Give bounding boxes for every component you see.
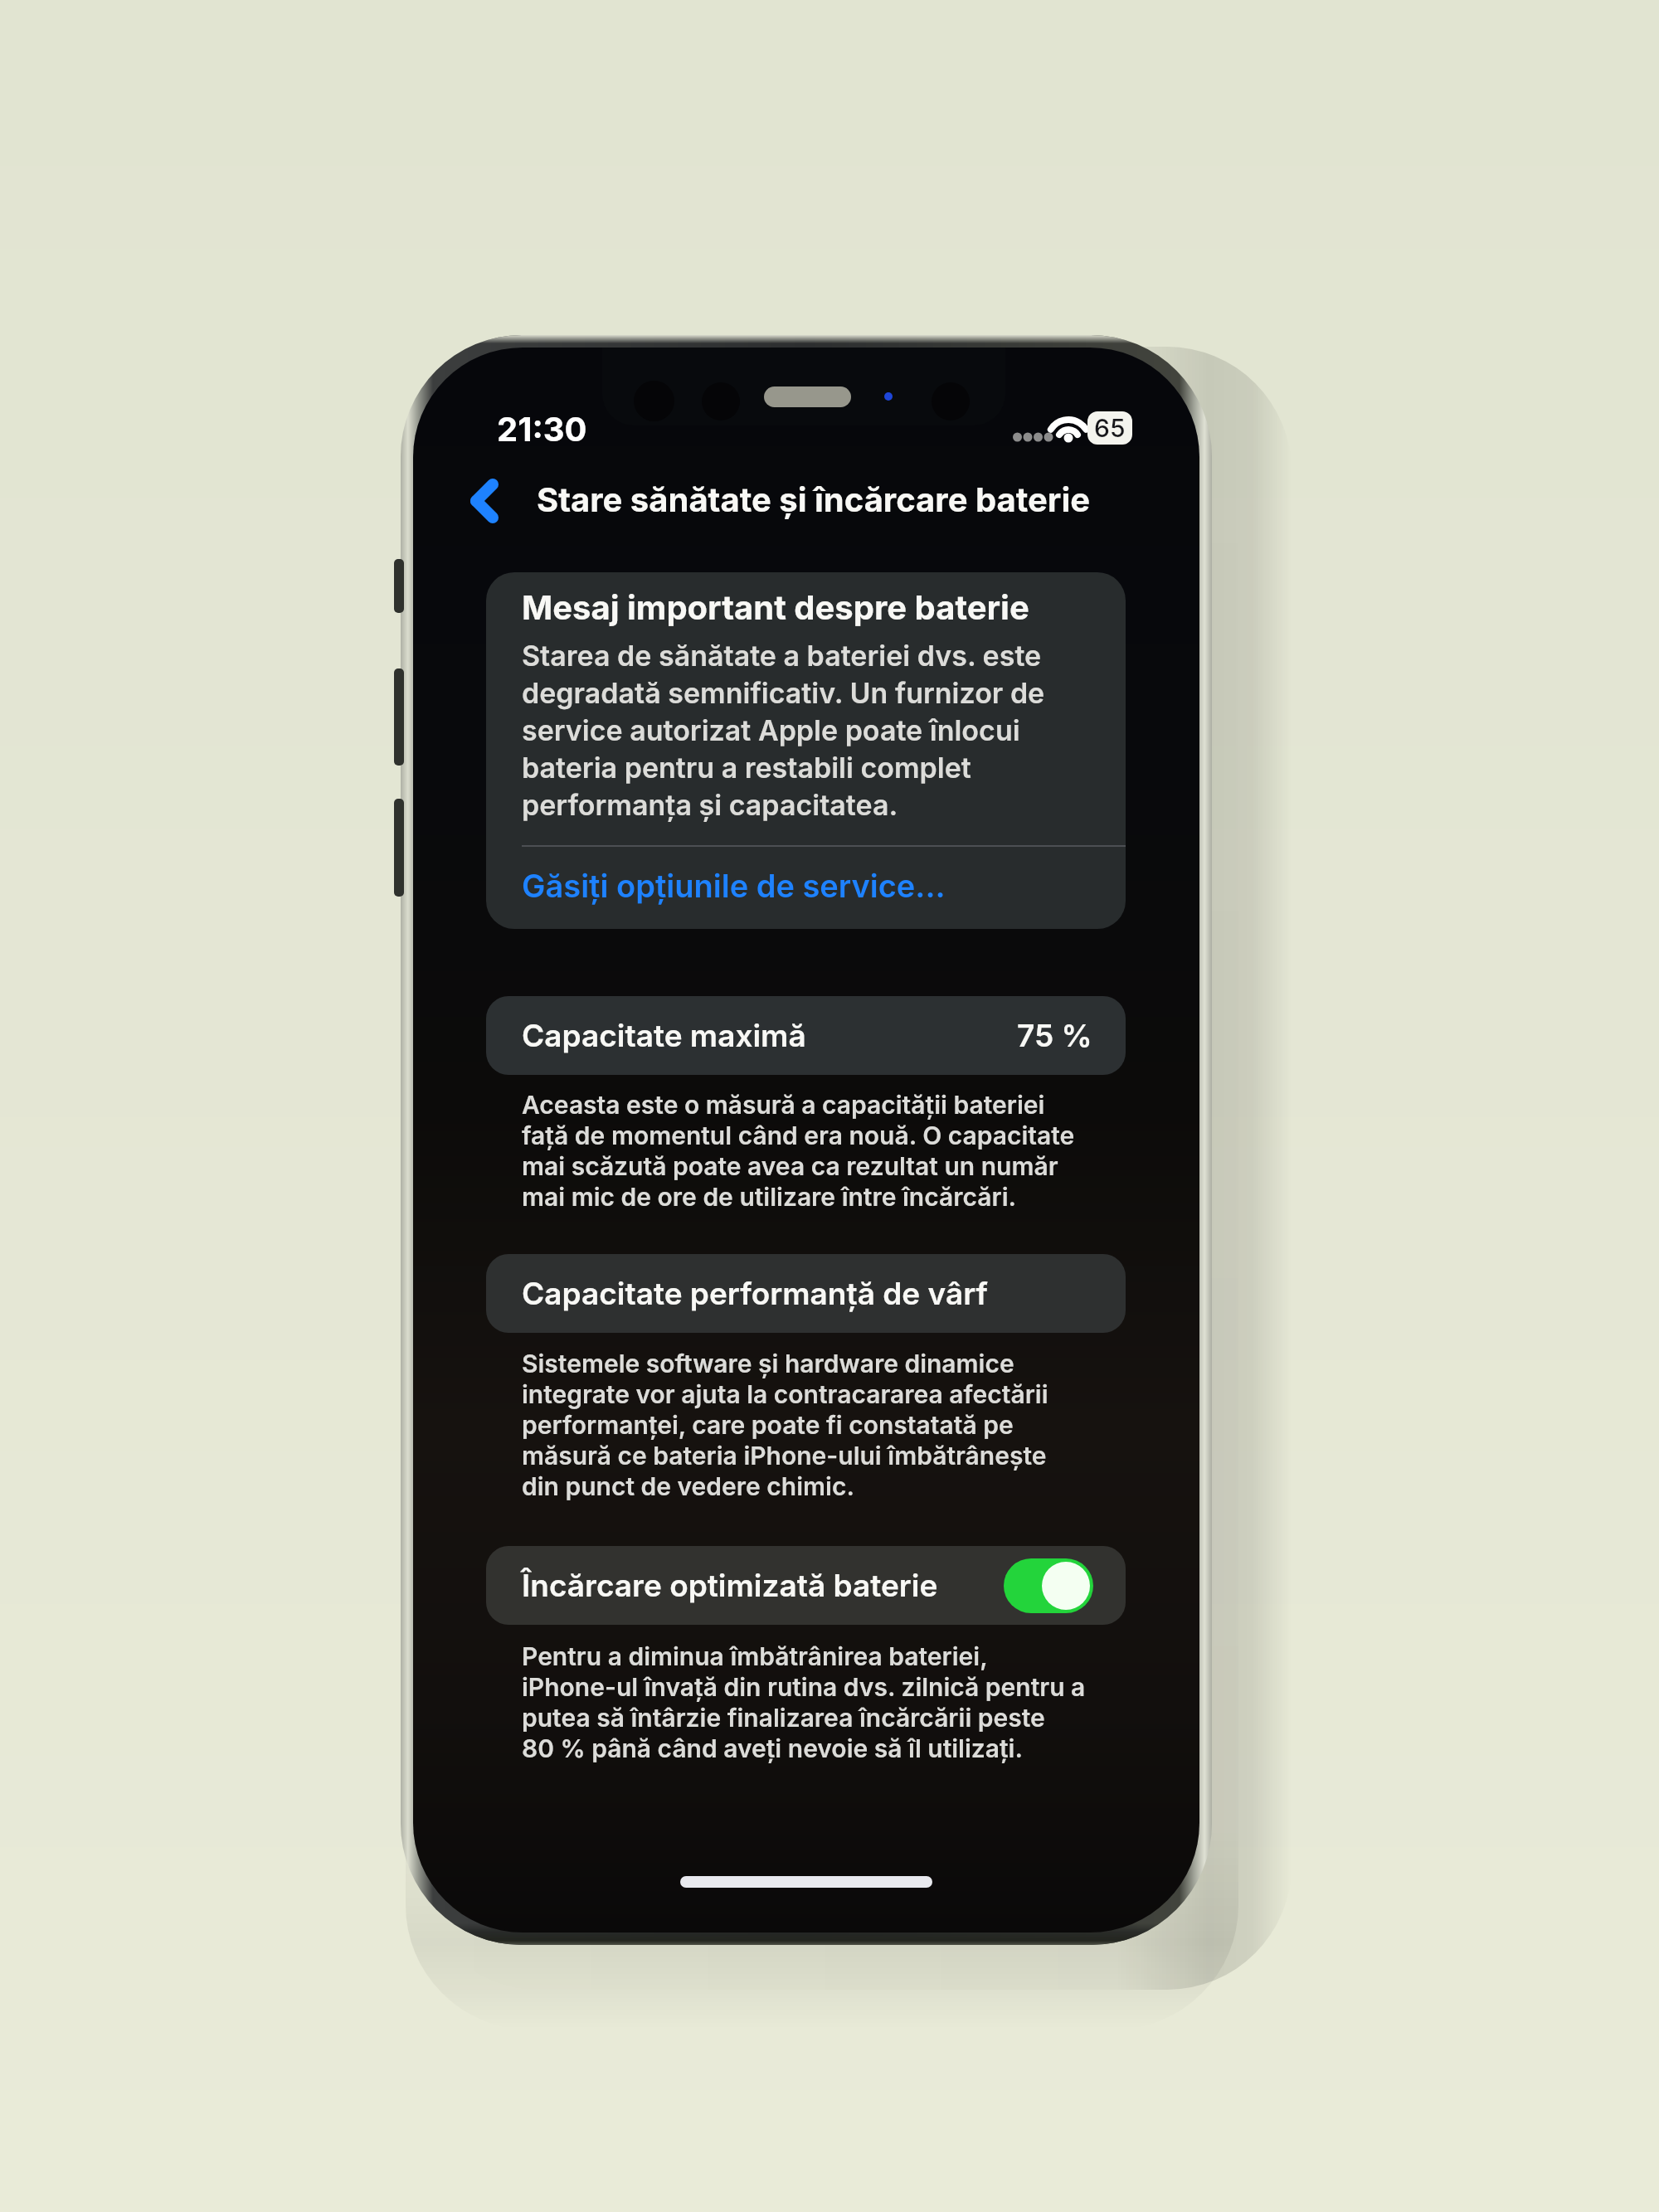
- staticText: Pentru a diminua îmbătrânirea bateriei, …: [522, 1641, 1119, 1763]
- button[interactable]: Capacitate performanță de vârf: [486, 1254, 1126, 1333]
- staticText: Capacitate performanță de vârf: [522, 1275, 988, 1312]
- staticText: Sistemele software și hardware dinamice …: [522, 1349, 1119, 1501]
- staticText: Găsiți opțiunile de service...: [522, 867, 946, 905]
- staticText: Aceasta este o măsură a capacității bate…: [522, 1090, 1119, 1212]
- button[interactable]: Încărcare optimizată baterie: [486, 1546, 1126, 1625]
- staticText: Capacitate maximă: [522, 1017, 806, 1054]
- staticText: 65: [1094, 413, 1126, 443]
- staticText: Mesaj important despre baterie: [522, 587, 1029, 627]
- button[interactable]: Capacitate maximă: [486, 996, 1126, 1075]
- button[interactable]: Găsiți opțiunile de service...: [486, 848, 1126, 929]
- staticText: Încărcare optimizată baterie: [522, 1567, 938, 1604]
- button[interactable]: Back: [453, 466, 516, 536]
- staticText: 21:30: [497, 409, 587, 449]
- staticText: Starea de sănătate a bateriei dvs. este …: [522, 639, 1102, 822]
- button[interactable]: Optimised battery charging: [1004, 1558, 1093, 1613]
- staticText: 75 %: [1017, 1017, 1092, 1054]
- staticText: Stare sănătate și încărcare baterie: [537, 479, 1091, 519]
